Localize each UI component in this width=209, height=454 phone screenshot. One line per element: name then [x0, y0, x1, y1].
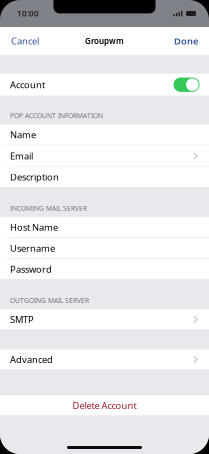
button[interactable]: Username — [0, 238, 209, 258]
staticText: Groupwm — [85, 36, 124, 46]
staticText: Advanced — [10, 353, 53, 366]
button[interactable]: Name — [0, 125, 209, 145]
staticText: Name — [10, 129, 36, 141]
button[interactable]: Email — [0, 146, 209, 166]
button[interactable]: Done — [168, 27, 209, 55]
staticText: Description — [10, 171, 59, 183]
staticText: Done — [174, 35, 198, 47]
staticText: Password — [10, 263, 52, 275]
button[interactable]: SMTP — [0, 309, 209, 329]
button[interactable]: Host Name — [0, 217, 209, 237]
button[interactable]: Delete Account — [0, 395, 209, 415]
staticText: Host Name — [10, 221, 58, 233]
button[interactable]: Account — [0, 74, 209, 96]
button[interactable]: Cancel — [0, 27, 45, 55]
button[interactable]: Password — [0, 259, 209, 279]
staticText: 10:00 — [17, 8, 39, 19]
staticText: OUTGOING MAIL SERVER — [10, 296, 89, 305]
staticText: Email — [10, 150, 33, 162]
staticText: Delete Account — [72, 399, 136, 412]
staticText: INCOMING MAIL SERVER — [10, 204, 87, 212]
staticText: Username — [10, 242, 55, 254]
staticText: Cancel — [11, 35, 39, 47]
staticText: POP ACCOUNT INFORMATION — [10, 111, 103, 120]
staticText: Account — [10, 78, 45, 91]
staticText: SMTP — [10, 313, 34, 326]
button[interactable]: Description — [0, 167, 209, 187]
button[interactable]: Advanced — [0, 349, 209, 369]
